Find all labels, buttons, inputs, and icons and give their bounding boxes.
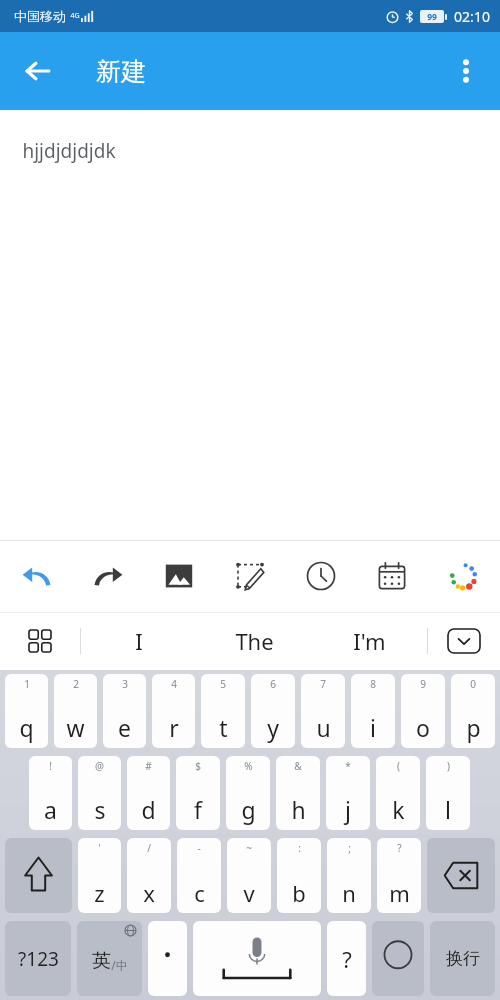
staticText: t bbox=[219, 712, 228, 743]
button[interactable]: Back bbox=[8, 41, 68, 101]
staticText: j bbox=[345, 794, 351, 825]
button[interactable]: $ bbox=[176, 756, 220, 830]
staticText: : bbox=[298, 841, 301, 855]
button[interactable]: 5 bbox=[201, 674, 245, 748]
button[interactable]: Hide keyboard bbox=[428, 612, 500, 670]
staticText: i bbox=[370, 712, 376, 743]
staticText: u bbox=[316, 712, 331, 743]
staticText: hjjdjdjdjdk bbox=[22, 138, 116, 164]
staticText: ) bbox=[447, 759, 450, 773]
staticText: a bbox=[44, 794, 57, 825]
button[interactable]: Insert image bbox=[156, 553, 202, 599]
staticText: p bbox=[466, 712, 481, 743]
staticText: 3 bbox=[122, 677, 128, 691]
staticText: m bbox=[389, 878, 410, 908]
button[interactable]: Redo bbox=[85, 553, 131, 599]
button[interactable]: I'm bbox=[312, 612, 427, 670]
staticText: & bbox=[294, 759, 302, 773]
button[interactable]: 1 bbox=[5, 674, 48, 748]
button[interactable]: @ bbox=[78, 756, 121, 830]
button[interactable]: 7 bbox=[301, 674, 345, 748]
staticText: h bbox=[291, 794, 306, 825]
button[interactable]: The bbox=[197, 612, 312, 670]
button[interactable]: I bbox=[81, 612, 197, 670]
staticText: I'm bbox=[353, 626, 386, 656]
staticText: 5 bbox=[220, 677, 226, 691]
staticText: v bbox=[243, 878, 255, 908]
staticText: 4 bbox=[171, 677, 177, 691]
staticText: e bbox=[118, 712, 131, 743]
staticText: l bbox=[445, 794, 451, 825]
button[interactable]: ; bbox=[327, 838, 371, 913]
staticText: z bbox=[94, 878, 105, 908]
staticText: 2 bbox=[73, 677, 79, 691]
staticText: ; bbox=[348, 841, 351, 855]
staticText: s bbox=[94, 794, 106, 825]
staticText: d bbox=[141, 794, 156, 825]
button[interactable]: & bbox=[276, 756, 320, 830]
button[interactable]: * bbox=[326, 756, 370, 830]
button[interactable]: Space bbox=[193, 921, 321, 996]
button[interactable]: Time bbox=[298, 553, 344, 599]
staticText: $ bbox=[195, 759, 201, 773]
staticText: ' bbox=[98, 841, 101, 855]
staticText: ?123 bbox=[18, 946, 59, 972]
staticText: - bbox=[197, 841, 201, 855]
button[interactable]: 换行 bbox=[430, 921, 495, 996]
button[interactable]: 8 bbox=[351, 674, 395, 748]
button[interactable]: : bbox=[277, 838, 321, 913]
button[interactable]: Emoji bbox=[372, 921, 424, 996]
button[interactable]: 4 bbox=[152, 674, 195, 748]
staticText: o bbox=[416, 712, 430, 743]
button[interactable]: ! bbox=[29, 756, 72, 830]
button[interactable]: % bbox=[226, 756, 270, 830]
staticText: r bbox=[169, 712, 179, 743]
button[interactable]: Period bbox=[148, 921, 187, 996]
staticText: * bbox=[345, 759, 351, 773]
staticText: I bbox=[135, 626, 143, 656]
staticText: 英 bbox=[92, 949, 111, 973]
button[interactable]: Shift bbox=[5, 838, 72, 913]
staticText: 新建 bbox=[96, 56, 146, 87]
button[interactable]: 2 bbox=[54, 674, 97, 748]
staticText: ~ bbox=[246, 841, 252, 855]
staticText: 0 bbox=[470, 677, 476, 691]
button[interactable]: Undo bbox=[14, 553, 60, 599]
button[interactable]: Switch language bbox=[77, 921, 142, 996]
button[interactable]: 9 bbox=[401, 674, 445, 748]
staticText: 02:10 bbox=[454, 7, 490, 26]
button[interactable]: ? bbox=[377, 838, 421, 913]
staticText: k bbox=[392, 794, 405, 825]
button[interactable]: ? bbox=[327, 921, 366, 996]
button[interactable]: Voice bbox=[440, 553, 486, 599]
staticText: w bbox=[66, 712, 85, 743]
staticText: # bbox=[145, 759, 152, 773]
button[interactable]: ' bbox=[78, 838, 121, 913]
staticText: x bbox=[143, 878, 155, 908]
button[interactable]: ?123 bbox=[5, 921, 71, 996]
button[interactable]: More options bbox=[440, 45, 492, 97]
staticText: 换行 bbox=[446, 948, 480, 969]
staticText: n bbox=[342, 878, 356, 908]
button[interactable]: 6 bbox=[251, 674, 295, 748]
staticText: The bbox=[235, 626, 274, 656]
button[interactable]: # bbox=[127, 756, 170, 830]
button[interactable]: 3 bbox=[103, 674, 146, 748]
staticText: % bbox=[244, 759, 253, 773]
staticText: 9 bbox=[420, 677, 426, 691]
button[interactable]: / bbox=[127, 838, 171, 913]
staticText: / bbox=[147, 841, 151, 855]
button[interactable]: ) bbox=[426, 756, 470, 830]
button[interactable]: Delete bbox=[427, 838, 495, 913]
staticText: ? bbox=[397, 841, 402, 855]
button[interactable]: Draw bbox=[227, 553, 273, 599]
staticText: c bbox=[194, 878, 205, 908]
button[interactable]: - bbox=[177, 838, 221, 913]
button[interactable]: ~ bbox=[227, 838, 271, 913]
button[interactable]: ( bbox=[376, 756, 420, 830]
button[interactable]: Calendar bbox=[369, 553, 415, 599]
staticText: g bbox=[241, 794, 256, 825]
staticText: 8 bbox=[370, 677, 376, 691]
button[interactable]: Keyboard menu bbox=[0, 612, 80, 670]
button[interactable]: 0 bbox=[451, 674, 495, 748]
